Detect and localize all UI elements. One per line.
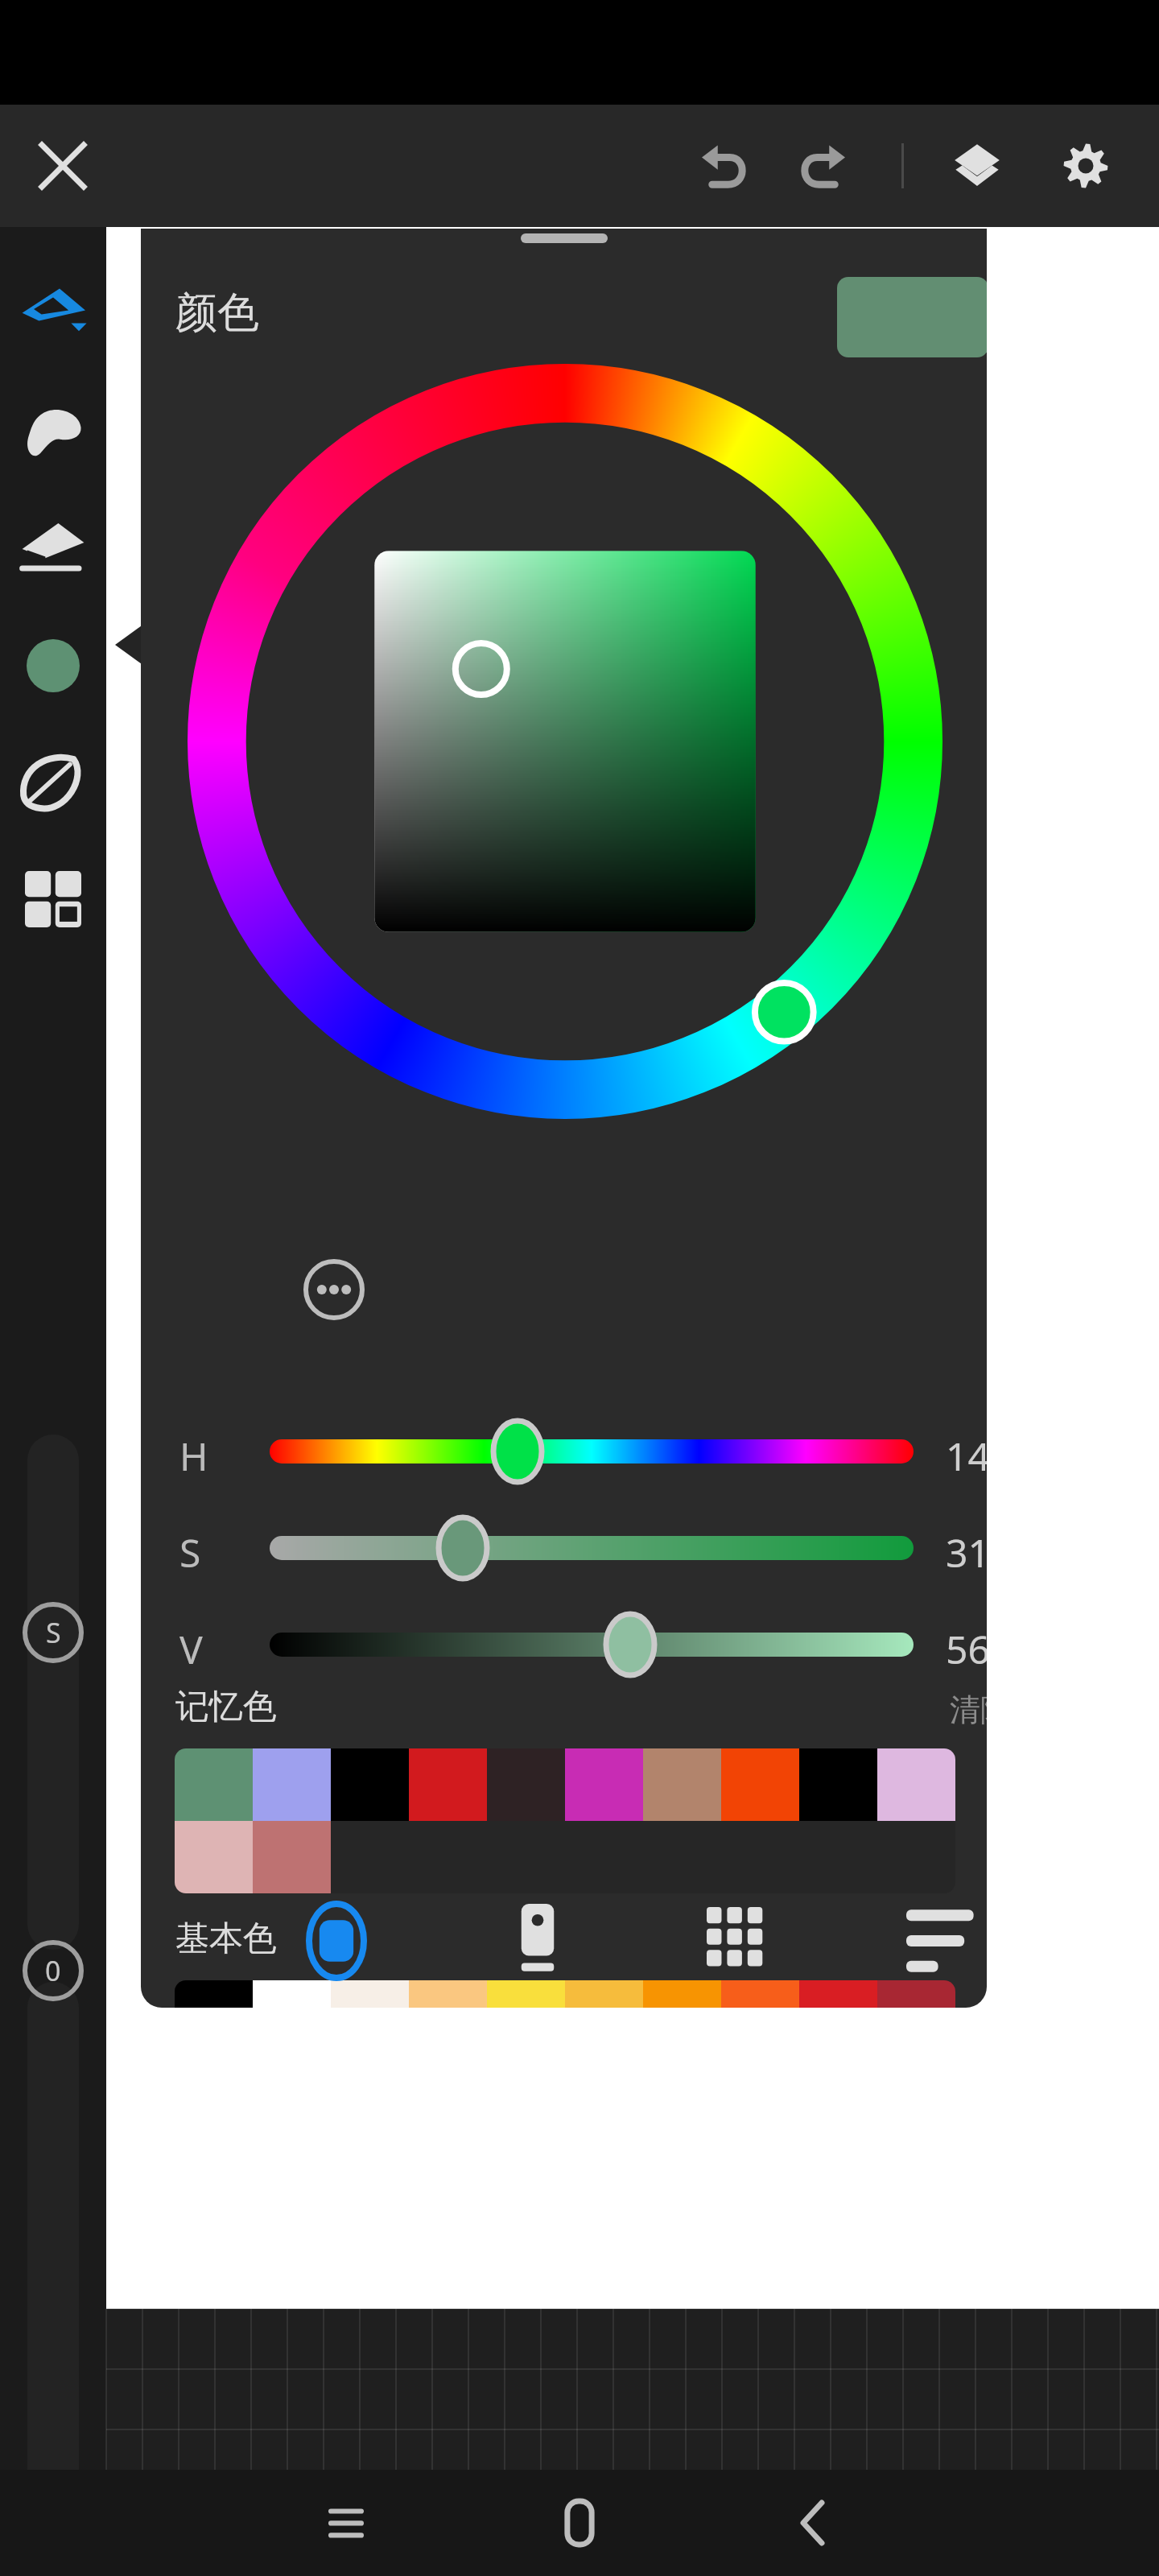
- staticText: H: [179, 1430, 208, 1482]
- button[interactable]: Color: [9, 621, 97, 710]
- staticText: 56: [946, 1623, 987, 1675]
- staticText: 清除: [950, 1690, 987, 1729]
- button[interactable]: Color swatch: [565, 1980, 643, 2008]
- button[interactable]: Color swatch: [175, 1748, 253, 1821]
- button[interactable]: V slider: [270, 1633, 914, 1657]
- button[interactable]: Opacity: [8, 1926, 98, 2016]
- button[interactable]: List: [889, 1889, 987, 1993]
- button[interactable]: Color swatch: [331, 1980, 409, 2008]
- button[interactable]: Color swatch: [565, 1748, 643, 1821]
- button[interactable]: Color swatch: [175, 1980, 253, 2008]
- button[interactable]: Layers: [940, 129, 1014, 203]
- button[interactable]: Color swatch: [643, 1980, 721, 2008]
- staticText: S: [46, 1614, 61, 1651]
- button[interactable]: Color swatch: [643, 1748, 721, 1821]
- button[interactable]: 清除: [950, 1690, 987, 1729]
- button[interactable]: Color swatch: [253, 1980, 331, 2008]
- button[interactable]: Color swatch: [721, 1748, 799, 1821]
- staticText: 颜色: [175, 287, 259, 340]
- button[interactable]: Grid: [688, 1889, 793, 1993]
- staticText: S: [179, 1526, 201, 1579]
- button[interactable]: Settings: [1049, 129, 1123, 203]
- staticText: 基本色: [175, 1918, 277, 1960]
- button[interactable]: H slider: [270, 1439, 914, 1463]
- button[interactable]: Palettes: [485, 1889, 590, 1993]
- button[interactable]: Color swatch: [877, 1748, 955, 1821]
- button[interactable]: Back: [769, 2479, 857, 2567]
- button[interactable]: Recents: [302, 2479, 390, 2567]
- button[interactable]: Color swatch: [487, 1980, 565, 2008]
- button[interactable]: Shape: [9, 738, 97, 827]
- staticText: 31: [946, 1526, 987, 1579]
- button[interactable]: Color wheel: [284, 1889, 389, 1993]
- button[interactable]: Color swatch: [409, 1748, 487, 1821]
- button[interactable]: Current color: [837, 277, 987, 357]
- button[interactable]: Brush size: [8, 1587, 98, 1678]
- staticText: 141: [946, 1430, 987, 1482]
- button[interactable]: Color swatch: [799, 1748, 877, 1821]
- button[interactable]: Smudge: [9, 388, 97, 477]
- button[interactable]: Layout: [9, 855, 97, 943]
- button[interactable]: Eraser: [9, 505, 97, 593]
- button[interactable]: Color swatch: [409, 1980, 487, 2008]
- staticText: 记忆色: [175, 1686, 277, 1728]
- button[interactable]: Color swatch: [175, 1821, 253, 1893]
- button[interactable]: Home: [535, 2479, 624, 2567]
- button[interactable]: Color swatch: [721, 1980, 799, 2008]
- button[interactable]: Color swatch: [253, 1748, 331, 1821]
- button[interactable]: Undo: [688, 129, 762, 203]
- button[interactable]: Redo: [785, 129, 859, 203]
- button[interactable]: Brush: [9, 271, 97, 360]
- button[interactable]: More options: [297, 1253, 371, 1327]
- button[interactable]: S slider: [270, 1536, 914, 1560]
- staticText: V: [179, 1623, 203, 1675]
- button[interactable]: Close: [23, 126, 103, 206]
- staticText: 0: [45, 1952, 61, 1989]
- button[interactable]: Color swatch: [799, 1980, 877, 2008]
- button[interactable]: Color swatch: [877, 1980, 955, 2008]
- button[interactable]: Color swatch: [331, 1748, 409, 1821]
